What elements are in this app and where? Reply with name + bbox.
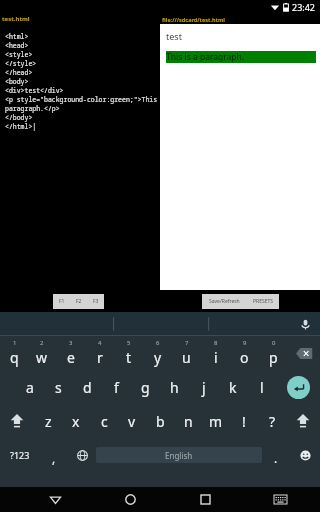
staticText: b (156, 412, 165, 431)
staticText: x (72, 412, 80, 431)
button[interactable]: Save/Refresh (202, 294, 247, 309)
staticText: n (184, 412, 193, 431)
button[interactable]: 2 (28, 338, 56, 368)
staticText: r (97, 348, 103, 367)
button[interactable]: 7 (172, 338, 201, 368)
staticText: file:///sdcard/test.html (162, 16, 225, 23)
staticText: 0 (272, 339, 276, 347)
staticText: paragraph.</p> (5, 104, 60, 113)
button[interactable]: ! (230, 406, 258, 436)
button[interactable]: g (131, 372, 160, 402)
button[interactable]: a (16, 372, 44, 402)
button[interactable]: Change language (68, 440, 96, 470)
staticText: 2 (40, 339, 44, 347)
button[interactable]: PRESETS (247, 294, 279, 309)
button[interactable]: F3 (87, 294, 104, 309)
button[interactable]: Emoji (290, 440, 320, 470)
button[interactable]: f (102, 372, 131, 402)
staticText: . (274, 450, 278, 466)
staticText: w (36, 348, 48, 367)
staticText: 23:42 (292, 1, 316, 13)
staticText: f (114, 378, 119, 397)
staticText: g (141, 378, 150, 397)
button[interactable]: s (44, 372, 73, 402)
button[interactable]: 8 (201, 338, 230, 368)
button[interactable]: Home (115, 487, 145, 512)
staticText: i (214, 348, 218, 367)
button[interactable]: Voice input (298, 317, 312, 331)
button[interactable]: b (146, 406, 174, 436)
button[interactable]: n (174, 406, 202, 436)
button[interactable]: 5 (114, 338, 143, 368)
button[interactable]: Delete (288, 338, 320, 368)
button[interactable]: j (189, 372, 218, 402)
staticText: F1 (59, 298, 65, 305)
button[interactable]: 1 (0, 338, 28, 368)
staticText: v (128, 412, 136, 431)
button[interactable]: F2 (70, 294, 87, 309)
staticText: 4 (98, 339, 102, 347)
button[interactable]: file:///sdcard/test.html (160, 14, 320, 24)
staticText: 3 (69, 339, 73, 347)
staticText: <html> (5, 32, 29, 41)
button[interactable]: z (34, 406, 62, 436)
staticText: test.html (2, 15, 30, 23)
button[interactable]: ?123 (0, 440, 40, 470)
button[interactable]: Switch keyboard (265, 487, 295, 512)
staticText: 8 (214, 339, 218, 347)
staticText: <style> (5, 50, 33, 59)
button[interactable]: English (96, 447, 262, 463)
staticText: y (154, 348, 162, 367)
button[interactable]: x (62, 406, 90, 436)
button[interactable]: , (40, 440, 68, 470)
button[interactable]: Recent apps (190, 487, 220, 512)
button[interactable]: k (218, 372, 247, 402)
staticText: d (83, 378, 92, 397)
button[interactable]: 3 (56, 338, 85, 368)
staticText: 7 (185, 339, 189, 347)
staticText: 1 (13, 339, 17, 347)
button[interactable]: test.html (0, 14, 160, 24)
staticText: F3 (93, 298, 99, 305)
staticText: <p style="background-color:green;">This … (5, 95, 160, 104)
staticText: Save/Refresh (209, 298, 240, 305)
staticText: u (182, 348, 191, 367)
staticText: <head> (5, 41, 29, 50)
button[interactable]: . (262, 440, 290, 470)
staticText: This is a paragraph. (166, 51, 245, 63)
staticText: 5 (127, 339, 131, 347)
button[interactable]: Shift (286, 406, 320, 436)
button[interactable]: h (160, 372, 189, 402)
staticText: e (67, 348, 75, 367)
button[interactable]: l (247, 372, 276, 402)
staticText: test (166, 30, 182, 42)
staticText: h (170, 378, 179, 397)
staticText: </head> (5, 68, 33, 77)
button[interactable]: Back (40, 487, 70, 512)
button[interactable]: 6 (143, 338, 172, 368)
button[interactable]: v (118, 406, 146, 436)
staticText: <body> (5, 77, 29, 86)
staticText: 6 (156, 339, 160, 347)
staticText: a (26, 378, 34, 397)
staticText: ?123 (10, 449, 30, 461)
staticText: o (240, 348, 249, 367)
button[interactable]: F1 (53, 294, 70, 309)
staticText: 9 (243, 339, 247, 347)
staticText: PRESETS (253, 298, 273, 305)
button[interactable]: ? (258, 406, 286, 436)
staticText: F2 (76, 298, 82, 305)
button[interactable]: d (73, 372, 102, 402)
button[interactable]: 9 (230, 338, 259, 368)
button[interactable]: 4 (85, 338, 114, 368)
staticText: ! (242, 412, 246, 431)
button[interactable]: c (90, 406, 118, 436)
staticText: </style> (5, 59, 37, 68)
staticText: l (260, 378, 264, 397)
button[interactable]: Shift (0, 406, 34, 436)
button[interactable]: Enter (276, 372, 320, 402)
button[interactable]: m (202, 406, 230, 436)
staticText: ? (269, 412, 276, 431)
staticText: p (269, 348, 278, 367)
button[interactable]: 0 (259, 338, 288, 368)
